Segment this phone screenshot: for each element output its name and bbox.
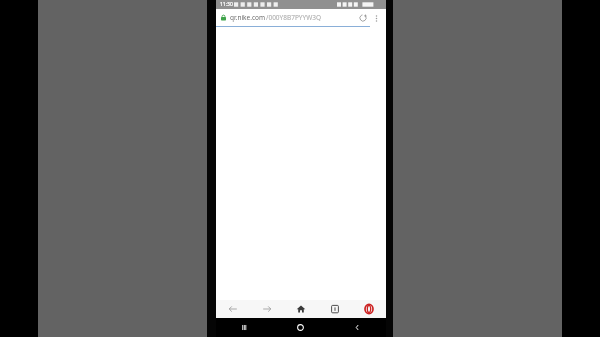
other: Secure connection	[220, 14, 227, 21]
button[interactable]: qr.nike.com	[230, 13, 356, 22]
button[interactable]: Home	[284, 300, 318, 318]
button[interactable]: Reload page	[356, 11, 370, 25]
button[interactable]: Opera menu	[352, 300, 386, 318]
staticText: qr.nike.com	[230, 13, 266, 22]
button[interactable]: Back	[329, 318, 386, 337]
button[interactable]: Forward	[250, 300, 284, 318]
button[interactable]: Home	[272, 318, 329, 337]
button[interactable]: More options	[370, 12, 382, 24]
button[interactable]: Recent apps	[216, 318, 272, 337]
staticText: 11:30	[220, 1, 233, 8]
button[interactable]: Back	[216, 300, 250, 318]
staticText: /000Y8B7PYYW3Q	[266, 13, 322, 22]
button[interactable]: Tabs	[318, 300, 352, 318]
